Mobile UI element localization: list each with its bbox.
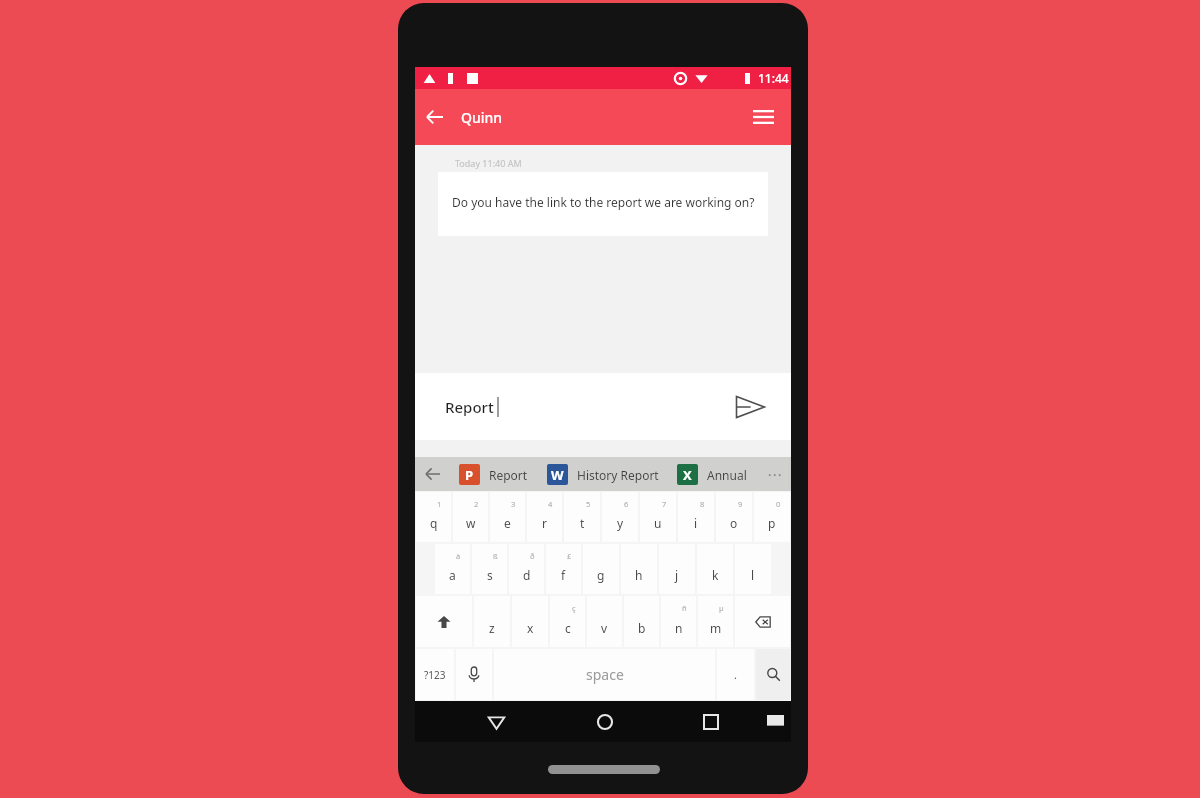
button[interactable]: Report <box>415 373 791 440</box>
button[interactable]: Back <box>419 101 451 133</box>
button[interactable]: r <box>526 491 563 543</box>
staticText: Report <box>445 397 494 417</box>
button[interactable]: Back <box>480 706 512 738</box>
staticText: p <box>768 515 776 531</box>
staticText: µ <box>719 603 724 613</box>
button[interactable]: y <box>601 491 639 543</box>
button[interactable]: Backspace <box>734 595 791 648</box>
staticText: ß <box>493 551 498 561</box>
staticText: h <box>635 567 643 583</box>
button[interactable]: Back <box>422 463 444 485</box>
staticText: 7 <box>662 499 667 509</box>
staticText: u <box>654 515 662 531</box>
button[interactable]: n <box>660 595 697 648</box>
staticText: ð <box>530 551 535 561</box>
button[interactable]: . <box>716 648 755 701</box>
button[interactable]: p <box>753 491 791 543</box>
staticText: 8 <box>700 499 705 509</box>
button[interactable]: W <box>547 464 659 485</box>
button[interactable]: s <box>471 543 508 595</box>
button[interactable]: j <box>658 543 696 595</box>
button[interactable]: k <box>696 543 734 595</box>
button[interactable]: h <box>620 543 658 595</box>
staticText: z <box>489 620 495 636</box>
staticText: 11:44 <box>758 70 789 86</box>
button[interactable]: Keyboard <box>762 709 788 735</box>
button[interactable]: g <box>582 543 620 595</box>
button[interactable]: ?123 <box>415 648 455 701</box>
staticText: ?123 <box>424 668 446 682</box>
staticText: . <box>734 667 737 682</box>
button[interactable]: u <box>639 491 677 543</box>
button[interactable]: Send <box>732 389 768 425</box>
button[interactable]: Menu <box>748 102 778 132</box>
staticText: k <box>712 567 719 583</box>
button[interactable]: c <box>549 595 586 648</box>
staticText: à <box>456 551 461 561</box>
staticText: W <box>551 466 564 484</box>
button[interactable]: v <box>586 595 623 648</box>
button[interactable]: Shift <box>415 595 473 648</box>
staticText: X <box>683 466 692 484</box>
staticText: b <box>638 620 646 636</box>
staticText: x <box>527 620 534 636</box>
staticText: l <box>751 567 755 583</box>
staticText: 4 <box>548 499 553 509</box>
staticText: space <box>586 665 624 684</box>
button[interactable]: o <box>715 491 753 543</box>
staticText: n <box>675 620 683 636</box>
staticText: 9 <box>738 499 743 509</box>
button[interactable]: a <box>434 543 471 595</box>
staticText: ç <box>572 603 576 613</box>
button[interactable]: P <box>459 464 528 485</box>
button[interactable]: x <box>511 595 549 648</box>
staticText: t <box>580 515 585 531</box>
staticText: s <box>487 567 493 583</box>
button[interactable]: Home <box>589 706 621 738</box>
staticText: g <box>597 567 605 583</box>
button[interactable]: i <box>677 491 715 543</box>
button[interactable]: Search <box>755 648 791 701</box>
button[interactable]: b <box>623 595 660 648</box>
button[interactable]: t <box>563 491 601 543</box>
staticText: w <box>466 515 476 531</box>
staticText: Report <box>489 467 528 483</box>
staticText: ñ <box>682 603 687 613</box>
staticText: History Report <box>577 467 659 483</box>
button[interactable]: q <box>415 491 452 543</box>
staticText: o <box>730 515 738 531</box>
staticText: Today 11:40 AM <box>455 157 522 169</box>
staticText: f <box>561 567 566 583</box>
button[interactable]: e <box>489 491 526 543</box>
staticText: 3 <box>511 499 516 509</box>
staticText: v <box>601 620 608 636</box>
staticText: c <box>565 620 571 636</box>
staticText: i <box>694 515 698 531</box>
staticText: P <box>465 466 474 484</box>
staticText: r <box>542 515 547 531</box>
button[interactable]: X <box>677 464 747 485</box>
staticText: e <box>504 515 511 531</box>
staticText: 6 <box>624 499 629 509</box>
button[interactable]: space <box>493 648 716 701</box>
staticText: ⋯ <box>767 466 782 483</box>
staticText: Do you have the link to the report we ar… <box>452 194 755 210</box>
button[interactable]: f <box>545 543 582 595</box>
staticText: q <box>430 515 438 531</box>
staticText: 2 <box>474 499 479 509</box>
staticText: a <box>449 567 456 583</box>
button[interactable]: Recents <box>695 706 727 738</box>
staticText: Quinn <box>461 108 503 127</box>
button[interactable]: m <box>697 595 734 648</box>
staticText: 1 <box>437 499 442 509</box>
staticText: d <box>523 567 531 583</box>
staticText: Annual <box>707 467 747 483</box>
staticText: 0 <box>776 499 781 509</box>
button[interactable]: z <box>473 595 511 648</box>
button[interactable]: l <box>734 543 772 595</box>
button[interactable]: w <box>452 491 489 543</box>
staticText: £ <box>567 551 572 561</box>
button[interactable]: d <box>508 543 545 595</box>
button[interactable]: Voice input <box>455 648 493 701</box>
staticText: j <box>675 567 679 583</box>
